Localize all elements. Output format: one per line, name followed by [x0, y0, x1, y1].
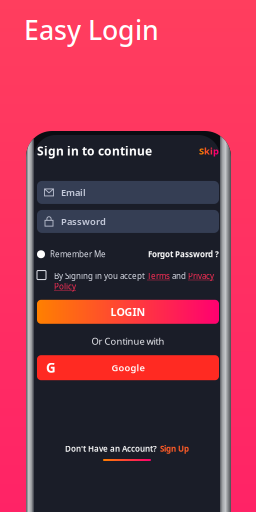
staticText: Easy Login: [24, 12, 159, 47]
staticText: Google: [111, 361, 144, 374]
staticText: k: [204, 145, 210, 157]
button[interactable]: Remember Me: [37, 249, 106, 259]
button[interactable]: Sign Up: [160, 443, 189, 454]
staticText: S: [199, 145, 204, 157]
staticText: Sign Up: [160, 443, 189, 454]
staticText: Sign in to continue: [37, 143, 152, 159]
staticText: Email: [61, 186, 86, 199]
staticText: By Signing in you accept Terms and Priva…: [54, 271, 214, 292]
staticText: p: [213, 145, 219, 157]
button[interactable]: S: [199, 145, 219, 157]
staticText: i: [210, 145, 213, 157]
staticText: Don't Have an Account?: [65, 443, 157, 454]
staticText: G: [46, 359, 56, 376]
staticText: Remember Me: [50, 249, 106, 259]
button[interactable]: By Signing in you accept Terms and Priva…: [54, 271, 216, 292]
button[interactable]: Google: [37, 355, 219, 380]
button[interactable]: Forgot Password ?: [148, 249, 219, 259]
staticText: LOGIN: [110, 305, 145, 319]
button[interactable]: Accept terms and privacy policy: [37, 271, 46, 280]
button[interactable]: LOGIN: [37, 300, 219, 324]
staticText: Or Continue with: [91, 335, 164, 347]
staticText: Forgot Password ?: [148, 249, 219, 259]
staticText: Password: [61, 215, 106, 228]
